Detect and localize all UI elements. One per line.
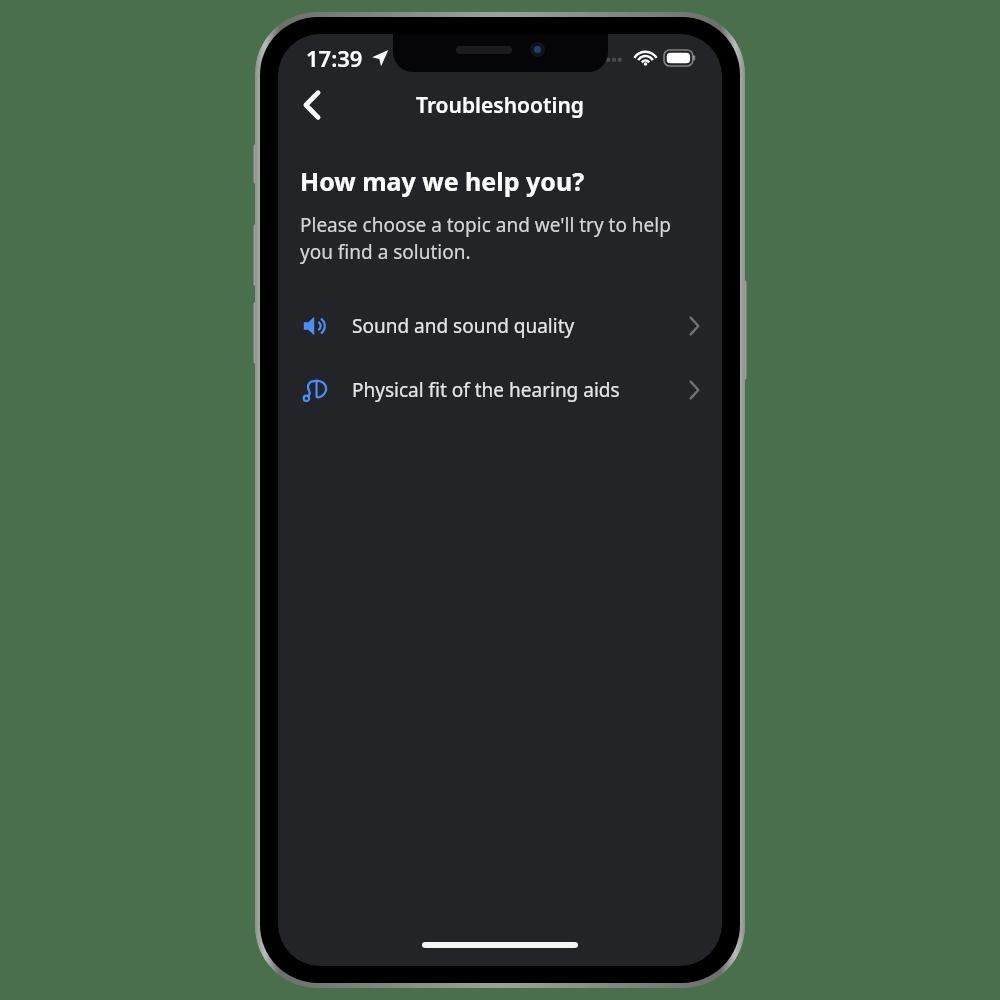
staticText: Physical fit of the hearing aids [352, 377, 620, 403]
button[interactable]: Physical fit of the hearing aids [278, 367, 722, 413]
staticText: Please choose a topic and we'll try to h… [300, 212, 700, 265]
staticText: Troubleshooting [416, 91, 584, 120]
staticText: How may we help you? [300, 164, 585, 198]
button[interactable]: Back [288, 81, 336, 129]
button[interactable]: Sound and sound quality [278, 303, 722, 349]
staticText: 17:39 [306, 43, 363, 73]
staticText: Sound and sound quality [352, 313, 575, 339]
